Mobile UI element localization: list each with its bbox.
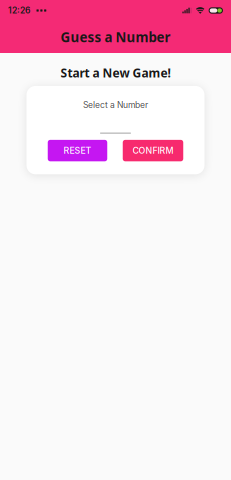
button[interactable]: RESET — [48, 140, 107, 161]
staticText: Start a New Game! — [60, 65, 170, 81]
staticText: CONFIRM — [132, 145, 173, 156]
staticText: 12:26 — [8, 5, 30, 16]
staticText: Guess a Number — [60, 28, 170, 46]
staticText: RESET — [63, 145, 91, 156]
staticText: Select a Number — [83, 100, 148, 110]
button[interactable]: CONFIRM — [123, 140, 183, 161]
